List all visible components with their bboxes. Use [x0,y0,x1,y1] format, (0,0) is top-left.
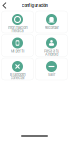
staticText: Recordar [44,25,58,30]
staticText: médica [11,28,23,33]
staticText: Mi perfil [10,49,24,53]
staticText: conectar [10,75,24,80]
staticText: Android [45,52,58,57]
button[interactable]: Bluetooth [1,58,33,80]
staticText: Bluetooth [9,72,25,77]
staticText: Configuración [21,3,47,8]
button[interactable]: Información [1,11,33,33]
button[interactable]: salir [35,58,67,80]
button[interactable]: Back [1,1,8,10]
button[interactable]: Mi perfil [1,34,33,56]
button[interactable]: Recordar [35,11,67,33]
staticText: Pasa a tu [44,49,59,53]
button[interactable]: Pasa a tu [35,34,67,56]
staticText: salir [48,72,55,77]
staticText: Información [7,25,27,30]
